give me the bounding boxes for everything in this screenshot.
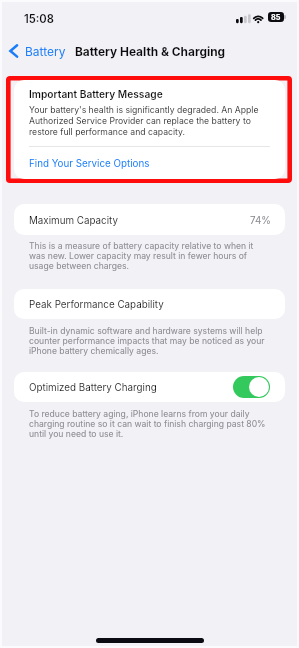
- staticText: Find Your Service Options: [29, 157, 150, 169]
- staticText: Built-in dynamic software and hardware s…: [29, 326, 265, 356]
- button[interactable]: Optimized Battery Charging: [14, 372, 285, 402]
- staticText: 74%: [250, 214, 271, 226]
- staticText: Optimized Battery Charging: [29, 381, 157, 393]
- button[interactable]: Find Your Service Options: [14, 147, 285, 179]
- staticText: To reduce battery aging, iPhone learns f…: [29, 409, 267, 439]
- button[interactable]: Back to Battery: [6, 38, 68, 63]
- staticText: Battery Health & Charging: [75, 44, 226, 59]
- staticText: This is a measure of battery capacity re…: [29, 241, 260, 271]
- staticText: Your battery's health is significantly d…: [29, 104, 273, 137]
- staticText: 85: [271, 13, 281, 22]
- staticText: Peak Performance Capability: [29, 298, 164, 310]
- staticText: 15:08: [24, 12, 54, 26]
- staticText: Maximum Capacity: [29, 214, 118, 226]
- staticText: Important Battery Message: [29, 88, 163, 101]
- button[interactable]: Optimized Battery Charging: [233, 376, 270, 398]
- staticText: Battery: [25, 44, 66, 59]
- button[interactable]: Maximum Capacity: [14, 204, 285, 235]
- button[interactable]: Peak Performance Capability: [14, 289, 285, 319]
